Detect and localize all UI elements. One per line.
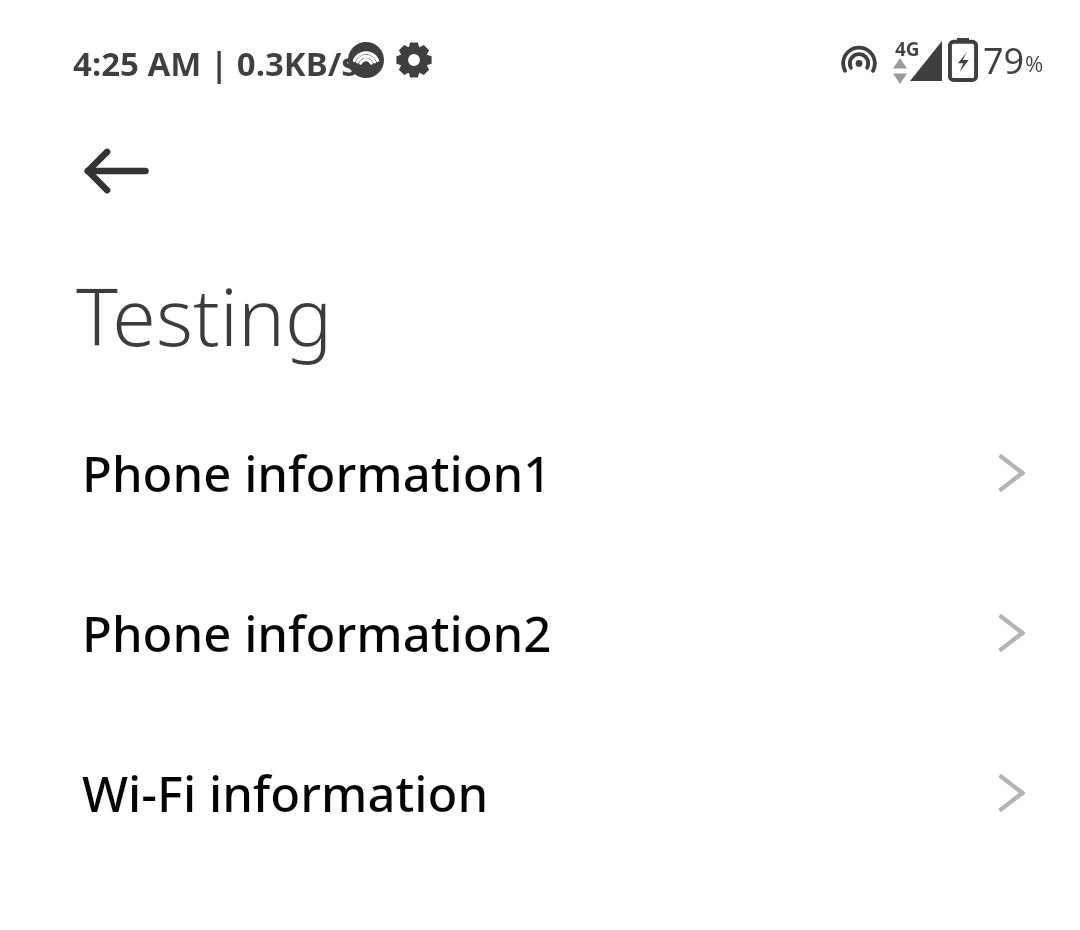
staticText: Testing: [76, 262, 333, 370]
staticText: Wi-Fi information: [82, 760, 988, 827]
button[interactable]: Back: [62, 124, 158, 220]
button[interactable]: Wi-Fi information: [0, 713, 1080, 873]
staticText: 4:25 AM | 0.3KB/s: [73, 41, 358, 86]
button[interactable]: Phone information2: [0, 553, 1080, 713]
staticText: 4G: [895, 36, 920, 62]
staticText: Phone information1: [82, 440, 988, 507]
staticText: 79: [983, 36, 1025, 85]
staticText: Phone information2: [82, 600, 988, 667]
button[interactable]: Phone information1: [0, 393, 1080, 553]
staticText: %: [1025, 48, 1044, 78]
